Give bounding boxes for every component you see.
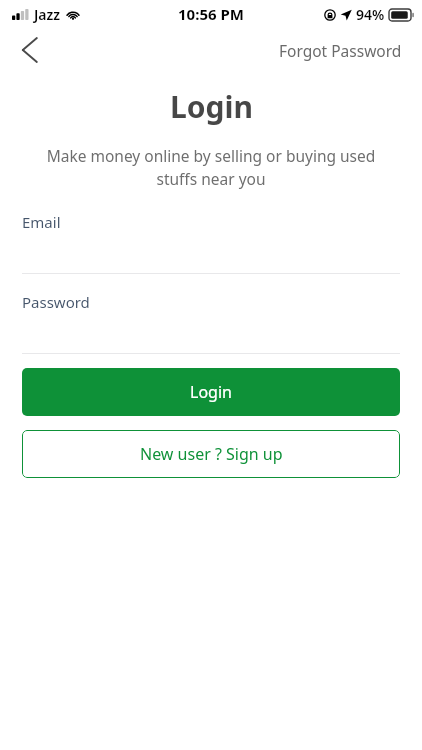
staticText: Make money online by selling or buying u…	[28, 145, 394, 190]
staticText: Login	[170, 86, 253, 127]
staticText: Login	[190, 381, 232, 403]
button[interactable]: Email	[0, 212, 422, 274]
staticText: New user ? Sign up	[140, 443, 283, 465]
button[interactable]: Back	[12, 32, 48, 68]
staticText: 94%	[356, 5, 385, 24]
button[interactable]: Password	[0, 292, 422, 354]
staticText: Password	[22, 292, 90, 312]
staticText: Forgot Password	[279, 40, 402, 61]
button[interactable]: Forgot Password	[259, 32, 422, 69]
staticText: Jazz	[34, 5, 61, 24]
staticText: 10:56 PM	[178, 4, 244, 24]
button[interactable]: New user ? Sign up	[22, 430, 400, 478]
staticText: Email	[22, 212, 61, 232]
button[interactable]: Login	[22, 368, 400, 416]
